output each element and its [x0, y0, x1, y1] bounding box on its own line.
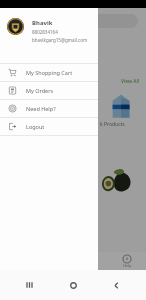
button[interactable]: View All [121, 78, 140, 85]
staticText: My Orders [26, 87, 54, 94]
button[interactable]: Home [60, 272, 86, 298]
button[interactable] [104, 91, 138, 121]
button[interactable]: Logout [0, 118, 98, 135]
staticText: My Shopping Cart [26, 69, 73, 76]
staticText: Logout [26, 123, 45, 130]
staticText: Need Help? [26, 105, 56, 112]
button[interactable]: Help [108, 252, 146, 270]
staticText: Bhavik [32, 19, 53, 27]
button[interactable]: Back [103, 272, 129, 298]
staticText: View All [121, 78, 140, 85]
other: Profile photo [7, 18, 24, 35]
button[interactable]: Recents [17, 272, 43, 298]
button[interactable]: My Orders [0, 82, 98, 99]
staticText: bhavikgarg15@gmail.com [32, 37, 88, 43]
button[interactable]: My Shopping Cart [0, 64, 98, 81]
button[interactable]: Search [8, 14, 138, 28]
staticText: Help [123, 263, 132, 268]
staticText: k Products [100, 121, 125, 128]
staticText: 8802834164 [32, 29, 58, 35]
button[interactable]: Need Help? [0, 100, 98, 117]
button[interactable]: Profile photo [0, 14, 98, 49]
